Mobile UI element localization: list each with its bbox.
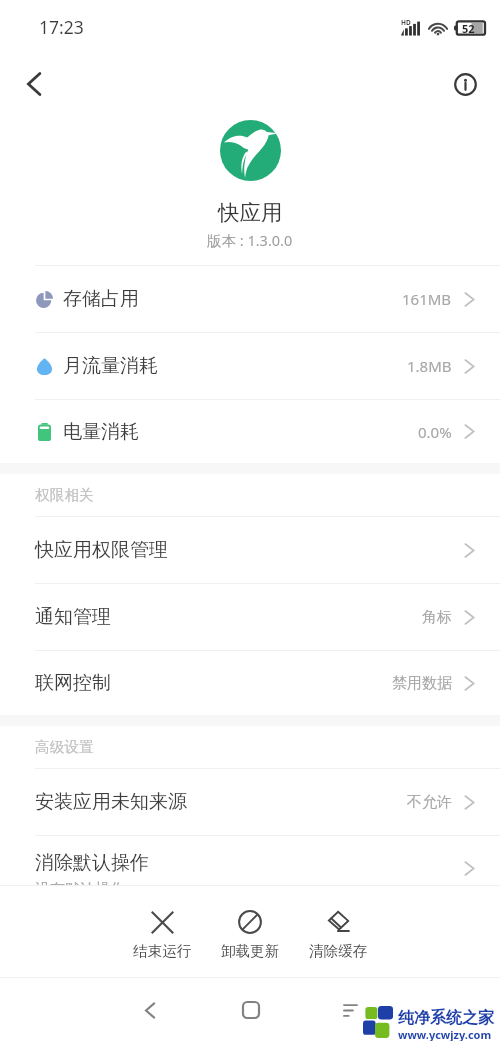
button[interactable]: Home — [228, 987, 274, 1033]
staticText: 快应用权限管理 — [35, 538, 168, 562]
staticText: 消除默认操作 — [35, 851, 149, 875]
button[interactable]: Back — [127, 987, 173, 1033]
staticText: 161MB — [402, 289, 452, 309]
staticText: 权限相关 — [35, 486, 94, 505]
staticText: www.ycwjzy.com — [398, 1027, 492, 1041]
staticText: 角标 — [422, 608, 452, 627]
staticText: 存储占用 — [63, 287, 139, 311]
button[interactable]: 清除缓存 — [294, 909, 382, 960]
button[interactable]: 快应用权限管理 — [0, 517, 500, 583]
button[interactable]: 结束运行 — [118, 909, 206, 960]
staticText: 联网控制 — [35, 671, 111, 695]
staticText: 52 — [462, 21, 475, 36]
button[interactable]: 通知管理 — [0, 584, 500, 650]
staticText: 结束运行 — [133, 942, 192, 960]
staticText: 通知管理 — [35, 605, 111, 629]
staticText: 高级设置 — [35, 738, 94, 757]
button[interactable]: Recents — [327, 987, 373, 1033]
staticText: 没有默认操作 — [35, 880, 125, 899]
staticText: 1.8MB — [407, 356, 452, 376]
button[interactable]: 联网控制 — [0, 651, 500, 715]
button[interactable]: Info — [443, 62, 487, 106]
button[interactable]: 存储占用 — [0, 266, 500, 332]
staticText: 安装应用未知来源 — [35, 790, 187, 814]
staticText: 17:23 — [39, 15, 84, 39]
button[interactable]: 安装应用未知来源 — [0, 769, 500, 835]
staticText: 0.0% — [418, 422, 452, 442]
staticText: 纯净系统之家 — [398, 1008, 494, 1028]
staticText: 电量消耗 — [63, 420, 139, 444]
button[interactable]: 月流量消耗 — [0, 333, 500, 399]
staticText: HD — [401, 18, 411, 27]
staticText: 快应用 — [218, 199, 283, 226]
button[interactable]: 电量消耗 — [0, 400, 500, 463]
staticText: 禁用数据 — [392, 674, 452, 693]
button[interactable]: Back — [12, 62, 56, 106]
staticText: 版本 : 1.3.0.0 — [207, 230, 293, 250]
staticText: 卸载更新 — [221, 942, 280, 960]
button[interactable]: 消除默认操作 — [0, 836, 500, 902]
staticText: 月流量消耗 — [63, 354, 158, 378]
staticText: 不允许 — [407, 793, 452, 812]
staticText: 清除缓存 — [309, 942, 368, 960]
button[interactable]: 卸载更新 — [206, 909, 294, 960]
